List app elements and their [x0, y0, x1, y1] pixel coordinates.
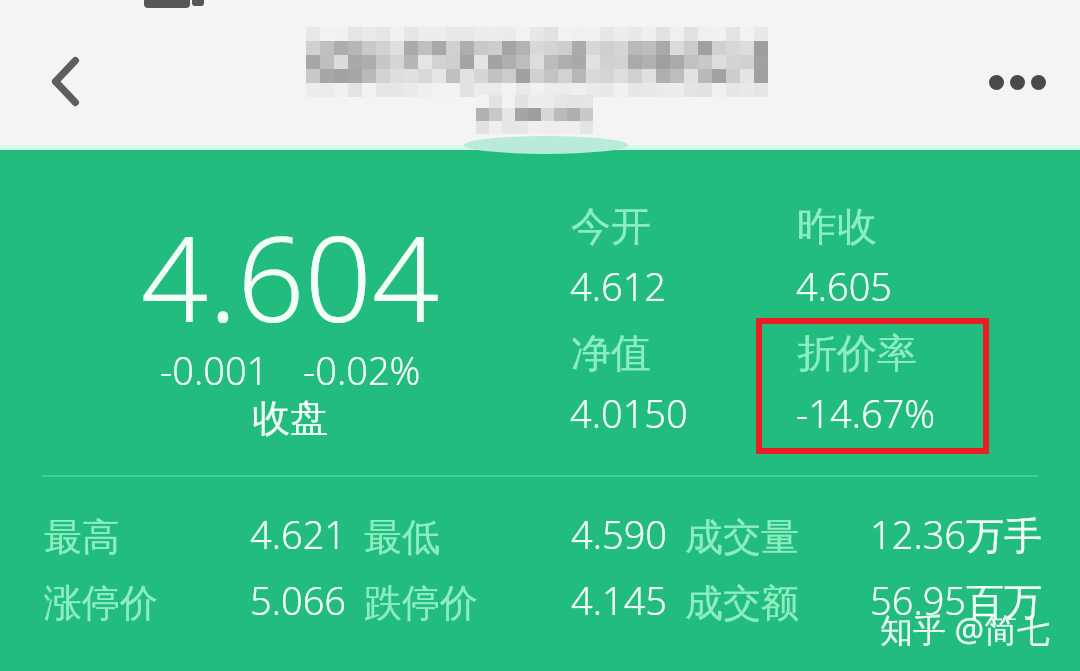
button[interactable]: 涨停价 5.066 跌停价 4.145 成交额 56.95百万	[0, 552, 1080, 618]
staticText: 涨停价	[44, 579, 158, 627]
button[interactable]: 折价率 -14.67%	[756, 318, 989, 454]
staticText: 今开	[571, 201, 651, 251]
staticText: -14.67%	[796, 387, 936, 439]
staticText: -0.02%	[303, 344, 421, 396]
staticText: 知乎 @简七	[880, 607, 1051, 652]
button[interactable]: More options	[974, 56, 1060, 108]
staticText: 4.612	[570, 260, 667, 312]
staticText: 跌停价	[364, 579, 478, 627]
staticText: 5.066	[250, 574, 347, 626]
staticText: 成交量	[685, 513, 799, 561]
staticText: 最低	[364, 513, 440, 561]
staticText: 收盘	[252, 394, 328, 442]
staticText: 4.590	[571, 508, 668, 560]
staticText: 成交额	[685, 579, 799, 627]
staticText: 4.0150	[570, 387, 688, 439]
staticText: 最高	[44, 513, 120, 561]
staticText: 56.95百万	[870, 574, 1043, 626]
staticText: 4.605	[796, 260, 893, 312]
staticText: 4.621	[250, 508, 347, 560]
button[interactable]: 今开 4.612	[560, 190, 786, 308]
button[interactable]: 净值 4.0150	[560, 318, 756, 454]
staticText: 4.145	[571, 574, 668, 626]
button[interactable]: Back	[25, 41, 105, 121]
staticText: 净值	[571, 328, 651, 378]
staticText: 4.604	[141, 196, 440, 357]
staticText: 折价率	[797, 328, 917, 378]
staticText: 12.36万手	[870, 508, 1043, 560]
staticText: 昨收	[797, 201, 877, 251]
button[interactable]: 昨收 4.605	[786, 190, 1026, 308]
staticText: -0.001	[160, 344, 269, 396]
button[interactable]: 最高 4.621 最低 4.590 成交量 12.36万手	[0, 486, 1080, 552]
